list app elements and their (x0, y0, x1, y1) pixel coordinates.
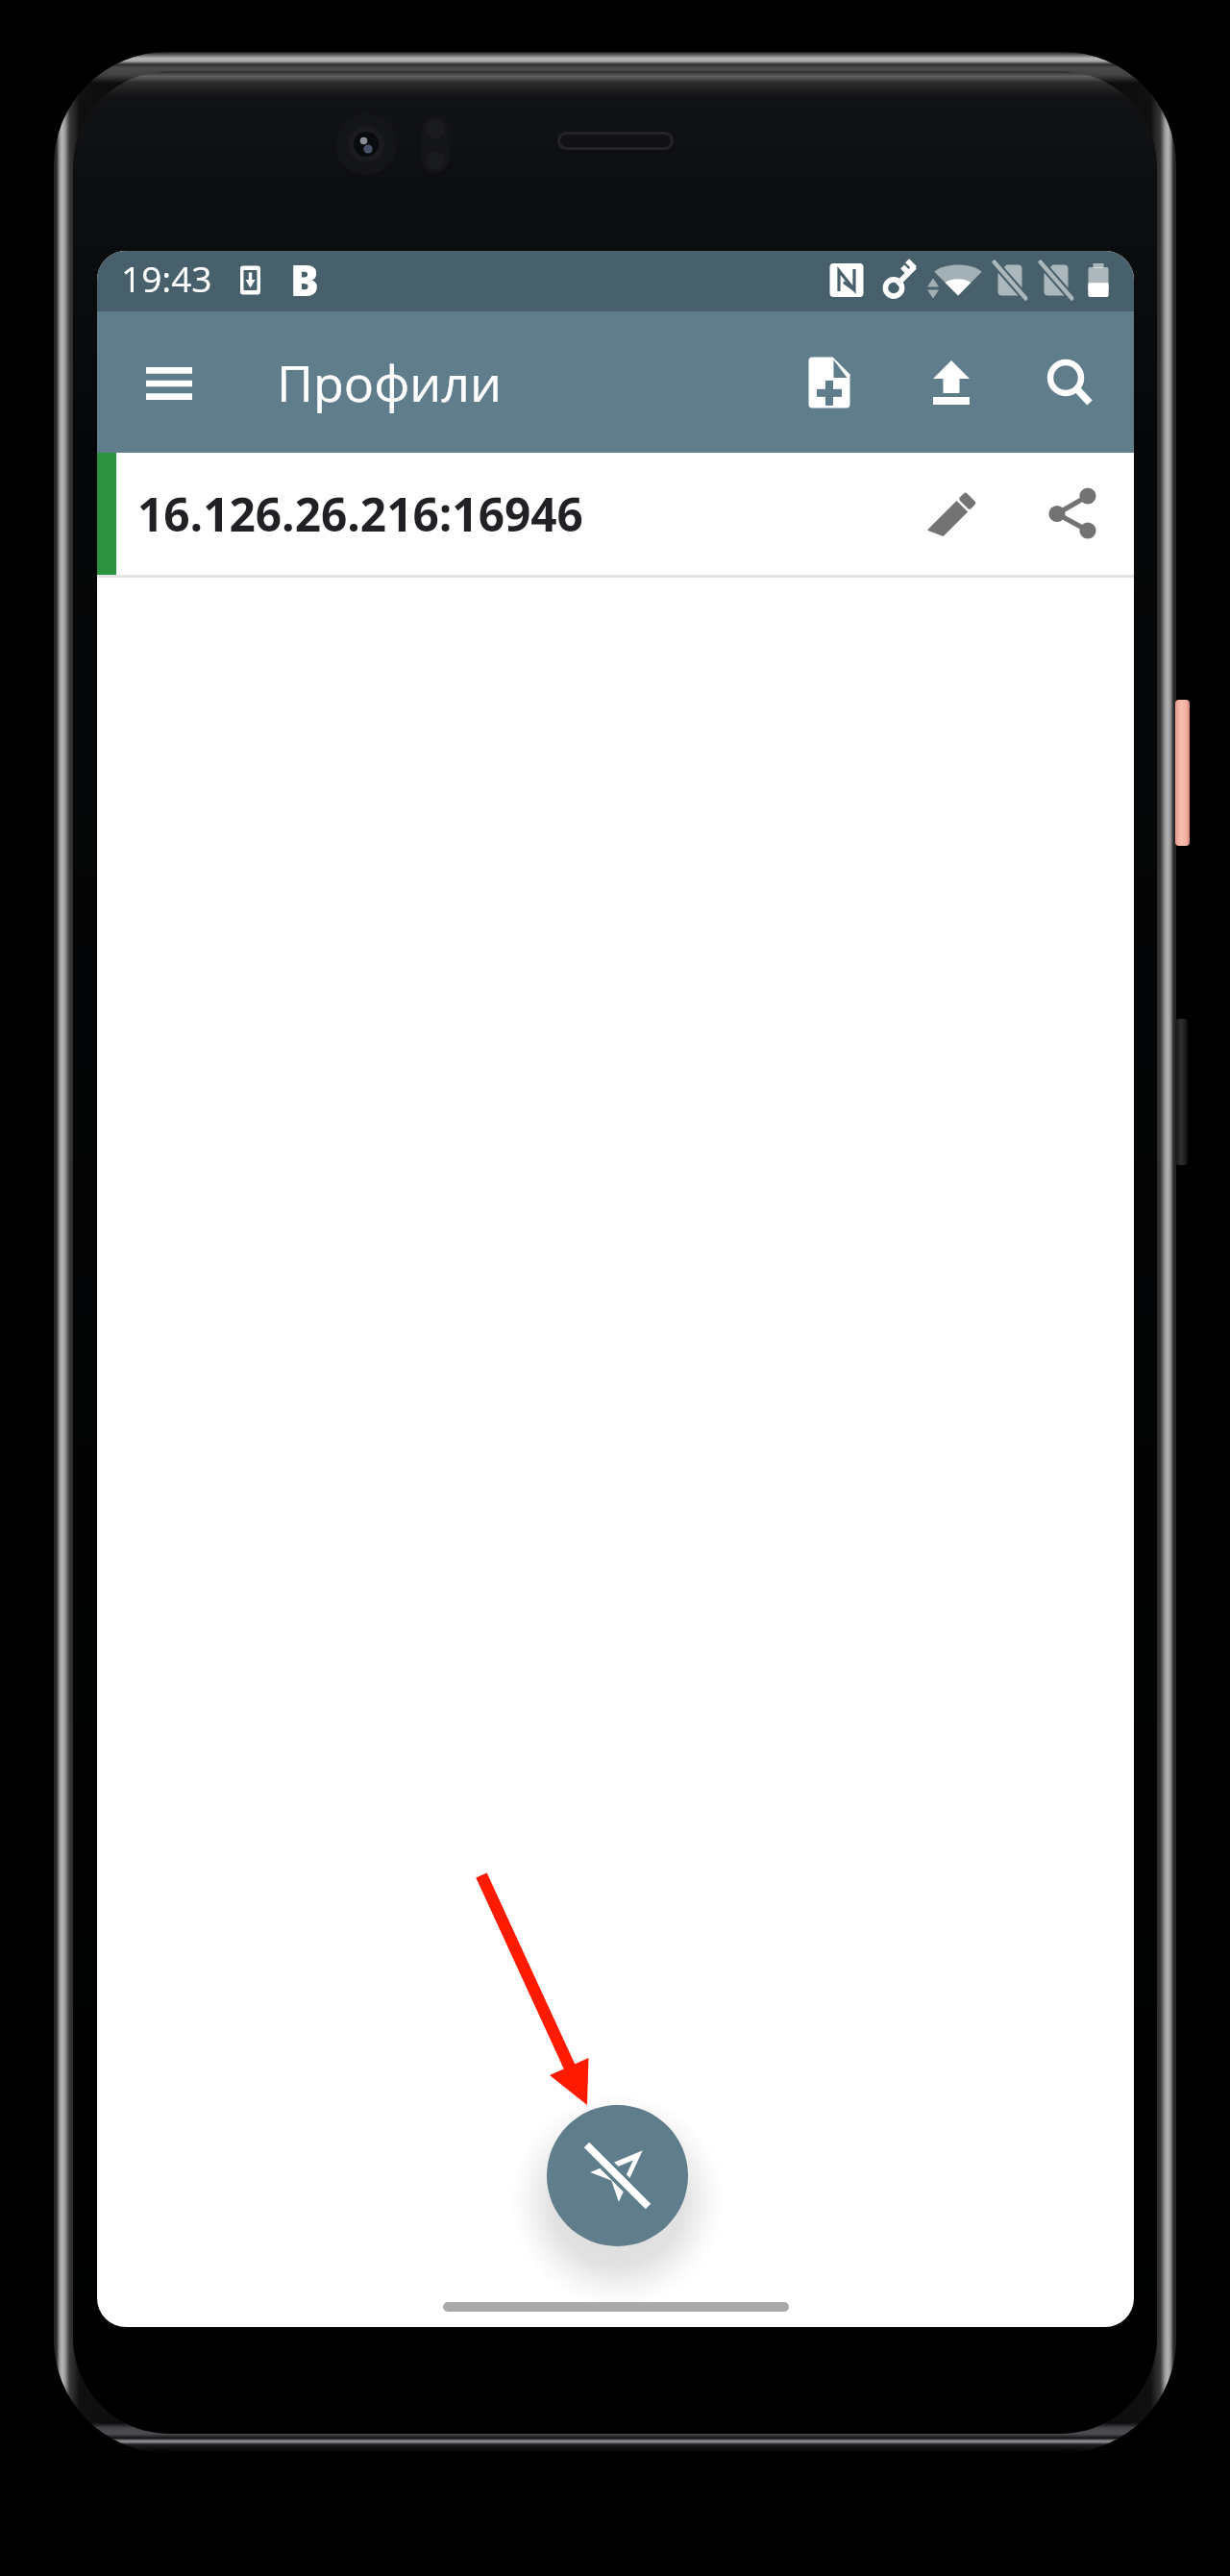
button[interactable]: 16.126.26.216:16946 (97, 453, 1134, 578)
staticText: 19:43 (121, 254, 212, 302)
button[interactable]: Create profile (778, 332, 880, 433)
button[interactable]: Open navigation menu (118, 332, 220, 433)
button[interactable]: Import profile (900, 332, 1002, 433)
staticText: 16.126.26.216:16946 (137, 483, 583, 545)
staticText: Профили (277, 348, 502, 416)
button[interactable]: Share profile (1021, 462, 1123, 564)
button[interactable]: Disconnect (547, 2105, 688, 2246)
button[interactable]: Edit profile (900, 462, 1002, 564)
button[interactable]: Search (1017, 332, 1119, 433)
staticText: В (290, 251, 319, 309)
